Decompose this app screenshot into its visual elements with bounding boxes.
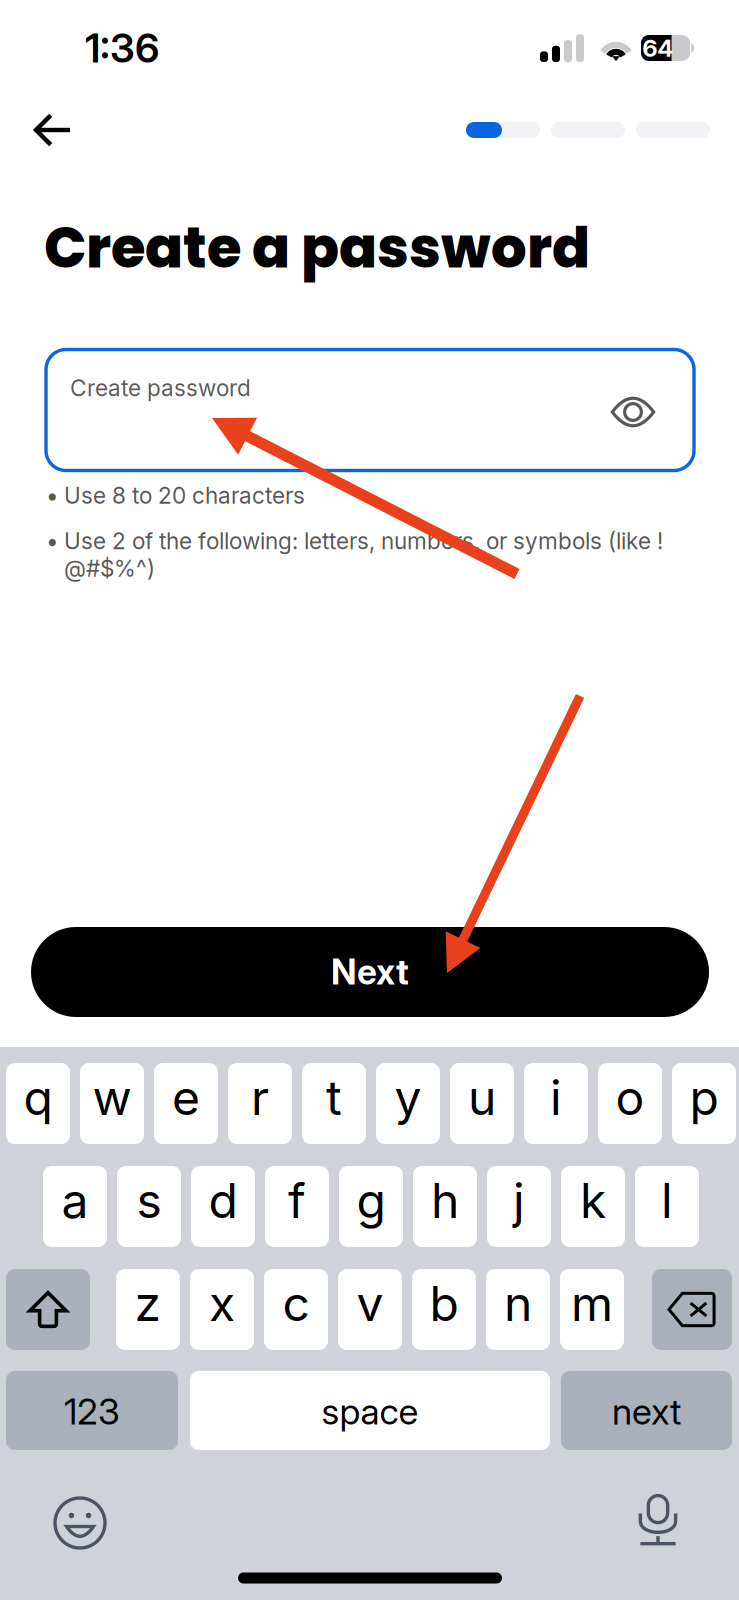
button[interactable]: x	[190, 1269, 254, 1350]
staticText: space	[321, 1390, 418, 1433]
button[interactable]: s	[117, 1166, 181, 1247]
button[interactable]: Shift	[6, 1269, 90, 1350]
staticText: Use 2 of the following: letters, numbers…	[64, 527, 663, 582]
button[interactable]: l	[635, 1166, 699, 1247]
button[interactable]: n	[486, 1269, 550, 1350]
button[interactable]: j	[487, 1166, 551, 1247]
staticText: f	[288, 1171, 306, 1230]
button[interactable]: d	[191, 1166, 255, 1247]
button[interactable]: f	[265, 1166, 329, 1247]
button[interactable]: 123	[6, 1371, 178, 1450]
button[interactable]: Emoji	[55, 1498, 105, 1548]
button[interactable]: o	[598, 1063, 662, 1144]
button[interactable]: p	[672, 1063, 736, 1144]
button[interactable]: m	[560, 1269, 624, 1350]
staticText: n	[504, 1274, 532, 1333]
button[interactable]: a	[43, 1166, 107, 1247]
staticText: p	[689, 1068, 718, 1127]
button[interactable]: z	[116, 1269, 180, 1350]
staticText: w	[92, 1068, 131, 1127]
staticText: t	[326, 1068, 342, 1127]
staticText: x	[209, 1274, 235, 1333]
button[interactable]: t	[302, 1063, 366, 1144]
button[interactable]: r	[228, 1063, 292, 1144]
staticText: e	[172, 1068, 200, 1127]
staticText: b	[429, 1274, 458, 1333]
button[interactable]: e	[154, 1063, 218, 1144]
button[interactable]: k	[561, 1166, 625, 1247]
staticText: a	[61, 1171, 88, 1230]
staticText: y	[394, 1068, 421, 1127]
staticText: Create password	[70, 374, 251, 402]
button[interactable]: w	[80, 1063, 144, 1144]
staticText: i	[550, 1068, 562, 1127]
staticText: s	[136, 1171, 161, 1230]
staticText: z	[134, 1274, 161, 1333]
staticText: •	[46, 482, 59, 509]
button[interactable]: y	[376, 1063, 440, 1144]
staticText: c	[282, 1274, 309, 1333]
button[interactable]: h	[413, 1166, 477, 1247]
staticText: 64	[642, 33, 673, 62]
button[interactable]: Next	[31, 927, 709, 1017]
button[interactable]: g	[339, 1166, 403, 1247]
staticText: r	[251, 1068, 269, 1127]
button[interactable]: Delete	[652, 1269, 732, 1350]
button[interactable]: next	[561, 1371, 732, 1450]
staticText: v	[356, 1274, 383, 1333]
button[interactable]: Show password	[611, 398, 655, 425]
staticText: •	[46, 527, 59, 555]
staticText: m	[571, 1274, 613, 1333]
button[interactable]: space	[190, 1371, 550, 1450]
staticText: Use 8 to 20 characters	[64, 482, 305, 509]
staticText: q	[23, 1068, 52, 1127]
button[interactable]: c	[264, 1269, 328, 1350]
staticText: 123	[64, 1390, 120, 1433]
staticText: o	[615, 1068, 644, 1127]
staticText: next	[612, 1390, 681, 1433]
staticText: l	[661, 1171, 673, 1230]
button[interactable]: v	[338, 1269, 402, 1350]
button[interactable]: q	[6, 1063, 70, 1144]
staticText: d	[208, 1171, 237, 1230]
staticText: u	[468, 1068, 496, 1127]
button[interactable]: Back	[34, 114, 72, 146]
staticText: Create a password	[44, 209, 590, 287]
staticText: Next	[331, 951, 409, 993]
button[interactable]: i	[524, 1063, 588, 1144]
button[interactable]: Dictate	[637, 1494, 679, 1548]
staticText: k	[580, 1171, 606, 1230]
staticText: h	[431, 1171, 459, 1230]
staticText: j	[513, 1171, 525, 1230]
staticText: 1:36	[85, 24, 159, 72]
staticText: g	[356, 1171, 385, 1230]
button[interactable]: b	[412, 1269, 476, 1350]
button[interactable]: u	[450, 1063, 514, 1144]
